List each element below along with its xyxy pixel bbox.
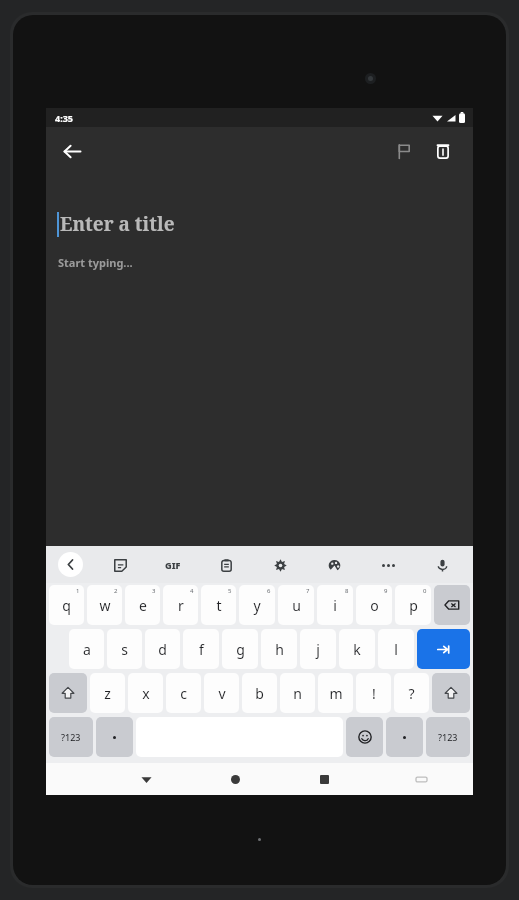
- staticText: r: [178, 596, 184, 615]
- button[interactable]: Back: [52, 131, 92, 171]
- staticText: GIF: [165, 559, 181, 571]
- button[interactable]: t: [201, 585, 236, 625]
- button[interactable]: Delete: [423, 131, 463, 171]
- button[interactable]: Emoji: [346, 717, 383, 757]
- button[interactable]: More: [375, 552, 401, 578]
- staticText: f: [199, 640, 204, 659]
- button[interactable]: p: [395, 585, 431, 625]
- staticText: a: [83, 640, 91, 659]
- button[interactable]: g: [222, 629, 258, 669]
- staticText: y: [253, 596, 261, 615]
- button[interactable]: Next: [417, 629, 470, 669]
- staticText: n: [293, 684, 302, 703]
- button[interactable]: Shift: [432, 673, 470, 713]
- staticText: j: [316, 640, 320, 659]
- staticText: g: [236, 640, 245, 659]
- button[interactable]: Start typing...: [58, 255, 133, 270]
- button[interactable]: a: [69, 629, 104, 669]
- staticText: d: [158, 640, 167, 659]
- button[interactable]: Hide keyboard: [118, 763, 175, 795]
- staticText: 0: [423, 587, 427, 595]
- button[interactable]: r: [163, 585, 198, 625]
- staticText: !: [372, 684, 376, 703]
- button[interactable]: GIF: [160, 552, 186, 578]
- button[interactable]: k: [339, 629, 375, 669]
- button[interactable]: j: [300, 629, 336, 669]
- button[interactable]: ?: [394, 673, 429, 713]
- staticText: 7: [306, 587, 310, 595]
- staticText: c: [180, 684, 187, 703]
- staticText: w: [99, 596, 111, 615]
- staticText: ?123: [61, 731, 81, 743]
- button[interactable]: Settings: [267, 552, 293, 578]
- staticText: v: [218, 684, 226, 703]
- staticText: u: [292, 596, 301, 615]
- button[interactable]: Recents: [296, 763, 353, 795]
- staticText: e: [139, 596, 147, 615]
- button[interactable]: Switch keyboard: [393, 763, 450, 795]
- staticText: o: [370, 596, 379, 615]
- button[interactable]: Back: [58, 552, 83, 577]
- staticText: 4: [190, 587, 194, 595]
- button[interactable]: Comma: [96, 717, 133, 757]
- button[interactable]: f: [183, 629, 219, 669]
- button[interactable]: Themes: [321, 552, 347, 578]
- button[interactable]: v: [204, 673, 239, 713]
- staticText: 5: [228, 587, 232, 595]
- staticText: i: [333, 596, 337, 615]
- button[interactable]: !: [356, 673, 391, 713]
- staticText: l: [394, 640, 398, 659]
- staticText: 4:35: [55, 112, 73, 124]
- staticText: s: [121, 640, 128, 659]
- button[interactable]: m: [318, 673, 353, 713]
- button[interactable]: x: [128, 673, 163, 713]
- staticText: ?: [408, 684, 415, 703]
- button[interactable]: y: [239, 585, 275, 625]
- button[interactable]: l: [378, 629, 414, 669]
- button[interactable]: s: [107, 629, 142, 669]
- button[interactable]: o: [356, 585, 392, 625]
- button[interactable]: z: [90, 673, 125, 713]
- button[interactable]: Sticker: [107, 552, 133, 578]
- button[interactable]: Home: [207, 763, 264, 795]
- staticText: z: [104, 684, 111, 703]
- button[interactable]: d: [145, 629, 180, 669]
- button[interactable]: e: [125, 585, 160, 625]
- button[interactable]: ?123: [49, 717, 93, 757]
- button[interactable]: Shift: [49, 673, 87, 713]
- staticText: b: [255, 684, 264, 703]
- button[interactable]: Pin: [383, 131, 423, 171]
- staticText: 9: [384, 587, 388, 595]
- button[interactable]: ?123: [426, 717, 470, 757]
- staticText: p: [409, 596, 418, 615]
- button[interactable]: w: [87, 585, 122, 625]
- staticText: x: [142, 684, 150, 703]
- button[interactable]: b: [242, 673, 277, 713]
- button[interactable]: i: [317, 585, 353, 625]
- button[interactable]: c: [166, 673, 201, 713]
- staticText: 6: [267, 587, 271, 595]
- button[interactable]: Backspace: [434, 585, 470, 625]
- staticText: m: [329, 684, 343, 703]
- button[interactable]: u: [278, 585, 314, 625]
- button[interactable]: Period: [386, 717, 423, 757]
- staticText: t: [216, 596, 222, 615]
- button[interactable]: Clipboard: [213, 552, 239, 578]
- staticText: h: [275, 640, 284, 659]
- button[interactable]: q: [49, 585, 84, 625]
- staticText: 1: [76, 587, 80, 595]
- staticText: ?123: [438, 731, 458, 743]
- button[interactable]: h: [261, 629, 297, 669]
- staticText: 3: [152, 587, 156, 595]
- staticText: q: [62, 596, 71, 615]
- staticText: Enter a title: [60, 211, 175, 237]
- staticText: k: [353, 640, 361, 659]
- button[interactable]: n: [280, 673, 315, 713]
- button[interactable]: Voice input: [429, 552, 455, 578]
- staticText: 2: [114, 587, 118, 595]
- staticText: 8: [345, 587, 349, 595]
